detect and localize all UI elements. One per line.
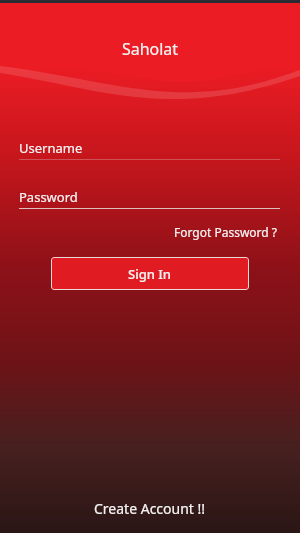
staticText: Sign In — [128, 265, 172, 283]
button[interactable]: Forgot Password ? — [172, 222, 280, 242]
staticText: Username — [19, 139, 83, 157]
button[interactable]: Password — [0, 186, 300, 208]
staticText: Create Account !! — [94, 499, 206, 518]
staticText: Saholat — [0, 38, 300, 60]
staticText: Forgot Password ? — [174, 224, 278, 240]
button[interactable]: Username — [0, 137, 300, 159]
button[interactable]: Sign In — [51, 257, 249, 290]
staticText: Password — [19, 188, 78, 206]
button[interactable]: Create Account !! — [0, 493, 300, 524]
